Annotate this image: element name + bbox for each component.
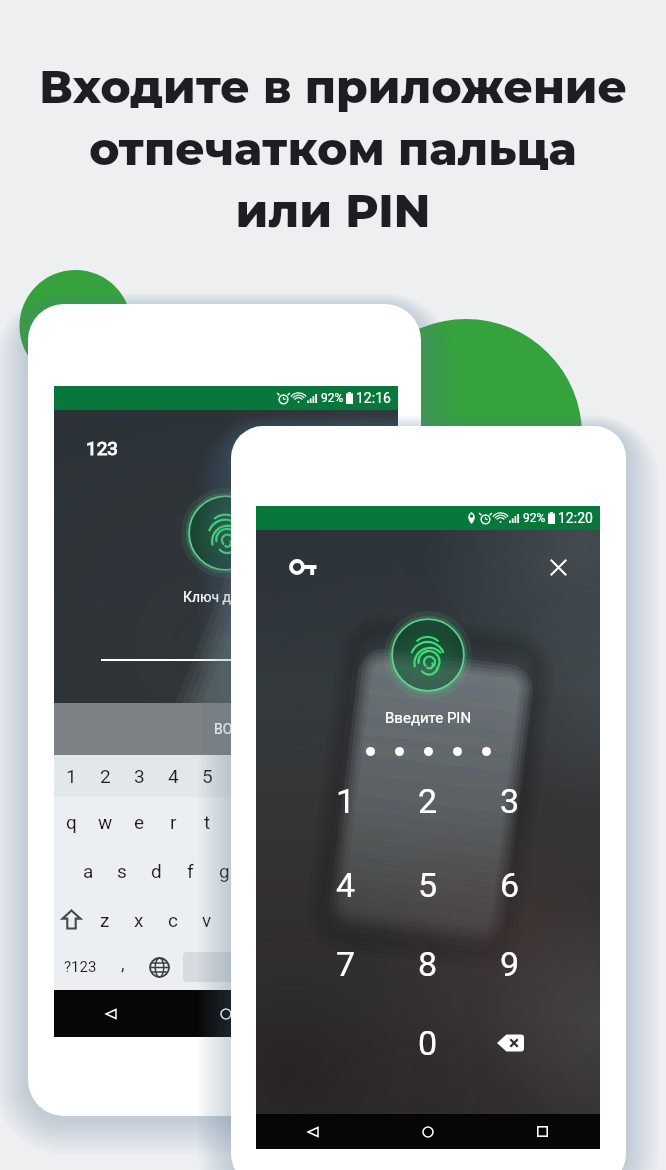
- staticText: 4: [168, 765, 179, 787]
- button[interactable]: a: [71, 846, 105, 895]
- staticText: e: [134, 811, 145, 833]
- button[interactable]: r: [156, 797, 190, 846]
- staticText: 3: [134, 765, 145, 787]
- button[interactable]: 5: [387, 845, 469, 925]
- button[interactable]: y: [224, 797, 258, 846]
- button[interactable]: 4: [156, 755, 190, 797]
- button[interactable]: 7: [305, 924, 387, 1004]
- button[interactable]: z: [88, 895, 122, 944]
- button[interactable]: Recents: [485, 1114, 600, 1149]
- button[interactable]: v: [190, 895, 224, 944]
- button[interactable]: w: [88, 797, 122, 846]
- button[interactable]: 5: [190, 755, 224, 797]
- button[interactable]: d: [139, 846, 173, 895]
- other: Backspace: [497, 1033, 524, 1053]
- staticText: r: [170, 811, 177, 833]
- button[interactable]: q: [54, 797, 88, 846]
- button[interactable]: s: [105, 846, 139, 895]
- staticText: 2: [418, 781, 438, 821]
- staticText: q: [66, 811, 77, 833]
- button[interactable]: 6: [224, 755, 258, 797]
- staticText: Входите в приложение отпечатком пальца и…: [0, 59, 666, 239]
- button[interactable]: t: [190, 797, 224, 846]
- staticText: Ключ до: [183, 589, 240, 605]
- staticText: 1: [66, 765, 77, 787]
- staticText: 5: [202, 765, 213, 787]
- staticText: 4: [336, 865, 356, 905]
- staticText: QWERTY: [252, 959, 307, 975]
- button[interactable]: 1: [305, 761, 387, 841]
- button[interactable]: Home: [168, 990, 283, 1037]
- button[interactable]: 2: [387, 761, 469, 841]
- staticText: Введите PIN: [385, 709, 472, 727]
- button[interactable]: Close: [538, 547, 578, 587]
- button[interactable]: 9: [469, 924, 551, 1004]
- button[interactable]: ?123: [54, 944, 106, 990]
- button[interactable]: 2: [88, 755, 122, 797]
- staticText: 92%: [523, 511, 546, 525]
- staticText: 1: [336, 781, 356, 821]
- button[interactable]: Home: [370, 1114, 485, 1149]
- staticText: 9: [338, 765, 349, 787]
- button[interactable]: Back: [256, 1114, 370, 1149]
- button[interactable]: Back: [54, 990, 168, 1037]
- staticText: ВОЙТИ: [214, 721, 261, 737]
- button[interactable]: 3: [122, 755, 156, 797]
- button[interactable]: f: [173, 846, 207, 895]
- staticText: 2: [100, 765, 111, 787]
- button[interactable]: p: [360, 797, 394, 846]
- button[interactable]: 8: [387, 924, 469, 1004]
- button[interactable]: Shift: [54, 895, 88, 944]
- button[interactable]: Backspace: [469, 1003, 551, 1083]
- button[interactable]: 1: [54, 755, 88, 797]
- staticText: 7: [336, 944, 356, 984]
- staticText: 0: [418, 1023, 438, 1063]
- button[interactable]: ВОЙТИ: [54, 703, 398, 755]
- staticText: 92%: [321, 391, 344, 405]
- button[interactable]: h: [241, 846, 275, 895]
- button[interactable]: b: [224, 895, 258, 944]
- button[interactable]: g: [207, 846, 241, 895]
- button[interactable]: k: [309, 846, 343, 895]
- button[interactable]: Key: [283, 547, 323, 587]
- staticText: 12:20: [558, 510, 593, 526]
- staticText: 6: [500, 865, 520, 905]
- button[interactable]: 9: [326, 755, 360, 797]
- button[interactable]: c: [156, 895, 190, 944]
- button[interactable]: 6: [469, 845, 551, 925]
- button[interactable]: e: [122, 797, 156, 846]
- button[interactable]: 3: [469, 761, 551, 841]
- button[interactable]: l: [343, 846, 377, 895]
- button[interactable]: 4: [305, 845, 387, 925]
- button[interactable]: x: [122, 895, 156, 944]
- staticText: t: [204, 811, 211, 833]
- button[interactable]: 0: [387, 1003, 469, 1083]
- button[interactable]: Change language: [139, 944, 179, 990]
- button[interactable]: 0: [360, 755, 394, 797]
- staticText: 8: [418, 944, 438, 984]
- button[interactable]: QWERTY: [183, 952, 316, 982]
- button[interactable]: o: [326, 797, 360, 846]
- staticText: g: [219, 860, 230, 882]
- staticText: o: [338, 811, 349, 833]
- staticText: w: [98, 811, 113, 833]
- staticText: 3: [500, 781, 520, 821]
- staticText: h: [253, 860, 264, 882]
- staticText: f: [187, 860, 194, 882]
- button[interactable]: ,: [106, 944, 139, 990]
